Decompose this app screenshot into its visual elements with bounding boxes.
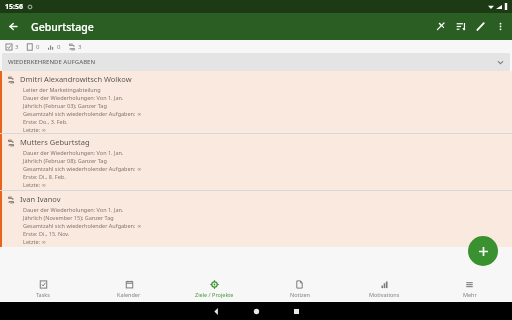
staticText: 3: [78, 43, 82, 51]
button[interactable]: Notizen: [257, 276, 342, 302]
staticText: Notizen: [290, 291, 310, 298]
staticText: Jährlich (Februar 08); Ganzer Tag: [23, 157, 107, 164]
staticText: Letzte: ∞: [23, 238, 47, 245]
staticText: Ziele / Projekte: [195, 291, 234, 298]
staticText: Dmitri Alexandrowitsch Wolkow: [20, 74, 132, 84]
button[interactable]: Zurück: [0, 13, 27, 40]
button[interactable]: Motivations: [342, 276, 427, 302]
button[interactable]: Ivan Ivanov: [0, 191, 512, 247]
staticText: 0: [36, 43, 40, 51]
button[interactable]: Mutters Geburtstag: [0, 134, 512, 190]
button[interactable]: Weitere Optionen: [490, 13, 510, 40]
button[interactable]: Dmitri Alexandrowitsch Wolkow: [0, 71, 512, 133]
staticText: Mehr: [463, 291, 477, 298]
button[interactable]: Sortieren: [450, 13, 470, 40]
button[interactable]: Tasks: [0, 276, 86, 302]
staticText: Jährlich (Februar 03); Ganzer Tag: [23, 102, 107, 109]
staticText: 3: [15, 43, 19, 51]
staticText: Letzte: ∞: [23, 181, 47, 188]
staticText: Erste: Do., 3. Feb.: [23, 118, 68, 125]
button[interactable]: Bearbeiten: [470, 13, 490, 40]
staticText: Erste: Di., 8. Feb.: [23, 173, 66, 180]
staticText: WIEDERKEHRENDE AUFGABEN: [8, 58, 96, 66]
staticText: 15:56: [5, 2, 23, 12]
button[interactable]: Anpinnen: [430, 13, 450, 40]
staticText: Jährlich (November 15); Ganzer Tag: [23, 214, 114, 221]
staticText: Geburtstage: [31, 20, 94, 34]
button[interactable]: 3: [68, 43, 82, 51]
staticText: Erste: Di., 15. Nov.: [23, 230, 70, 237]
staticText: Dauer der Wiederholungen: Von 1. Jan.: [23, 149, 124, 156]
staticText: Gesamtzahl sich wiederholender Aufgaben:…: [23, 165, 142, 172]
staticText: Dauer der Wiederholungen: Von 1. Jan.: [23, 94, 124, 101]
staticText: Mutters Geburtstag: [20, 137, 90, 147]
button[interactable]: Startseite: [236, 302, 276, 320]
button[interactable]: Mehr: [427, 276, 512, 302]
button[interactable]: 0: [47, 43, 61, 51]
button[interactable]: Ziele / Projekte: [172, 276, 257, 302]
staticText: Gesamtzahl sich wiederholender Aufgaben:…: [23, 222, 142, 229]
button[interactable]: Kalender: [86, 276, 172, 302]
button[interactable]: 3: [5, 43, 19, 51]
button[interactable]: Neue Aufgabe hinzufügen: [468, 236, 498, 266]
button[interactable]: Letzte Apps: [276, 302, 316, 320]
staticText: Letzte: ∞: [23, 126, 47, 132]
button[interactable]: WIEDERKEHRENDE AUFGABEN: [2, 53, 510, 71]
button[interactable]: 0: [26, 43, 40, 51]
staticText: 0: [57, 43, 61, 51]
staticText: Ivan Ivanov: [20, 194, 61, 204]
button[interactable]: Zurück: [196, 302, 236, 320]
staticText: Dauer der Wiederholungen: Von 1. Jan.: [23, 206, 124, 213]
staticText: Gesamtzahl sich wiederholender Aufgaben:…: [23, 110, 142, 117]
staticText: Leiter der Marketingabteilung: [23, 86, 101, 93]
staticText: Tasks: [36, 291, 50, 298]
staticText: Kalender: [117, 291, 141, 298]
staticText: Motivations: [369, 291, 400, 298]
